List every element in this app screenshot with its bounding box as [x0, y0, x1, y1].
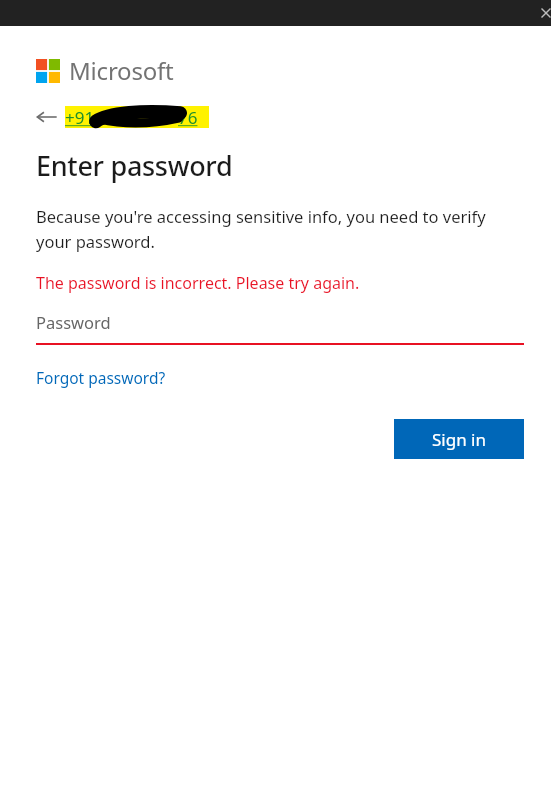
staticText: Password: [36, 311, 111, 333]
staticText: 76: [178, 106, 198, 128]
staticText: Because you're accessing sensitive info,…: [36, 205, 524, 252]
button[interactable]: Back: [36, 106, 58, 128]
button[interactable]: Close: [533, 0, 551, 26]
button[interactable]: Sign in: [394, 419, 524, 459]
button[interactable]: Forgot password?: [36, 367, 166, 388]
staticText: +91: [65, 106, 95, 128]
button[interactable]: Password: [36, 309, 524, 345]
staticText: Microsoft: [69, 54, 174, 87]
staticText: Forgot password?: [36, 367, 166, 388]
staticText: Enter password: [36, 147, 233, 184]
staticText: Sign in: [432, 428, 486, 451]
button[interactable]: +91: [65, 106, 209, 128]
staticText: The password is incorrect. Please try ag…: [36, 272, 360, 294]
